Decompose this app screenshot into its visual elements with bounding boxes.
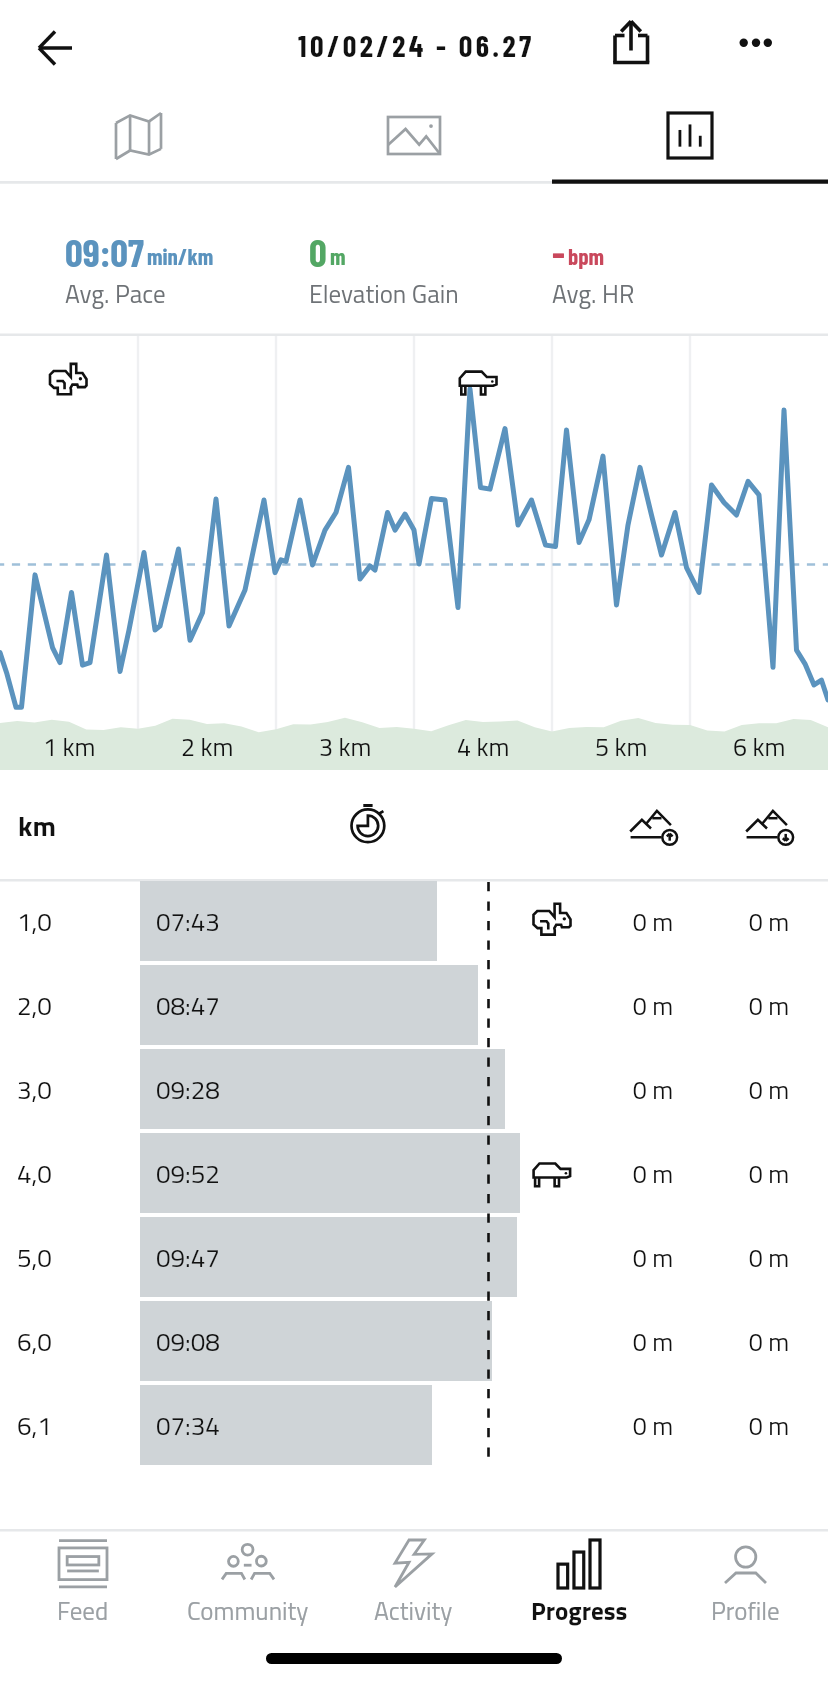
staticText: 2 km xyxy=(181,728,234,766)
staticText: 0 m xyxy=(729,1407,809,1445)
staticText: Progress xyxy=(531,1592,628,1630)
staticText: 3,0 xyxy=(17,1070,52,1110)
staticText: 09:47 xyxy=(156,1238,220,1278)
staticText: 07:43 xyxy=(156,902,220,942)
button[interactable]: 4,0 xyxy=(0,1133,828,1217)
staticText: 07:34 xyxy=(156,1406,220,1446)
staticText: Activity xyxy=(374,1592,453,1630)
button[interactable]: Feed xyxy=(0,1529,165,1653)
staticText: 5 km xyxy=(595,728,648,766)
staticText: 0 m xyxy=(613,1071,693,1109)
staticText: 6 km xyxy=(733,728,786,766)
staticText: 0 m xyxy=(729,1323,809,1361)
staticText: 6,1 xyxy=(17,1406,52,1446)
button[interactable]: 6,1 xyxy=(0,1385,828,1469)
button[interactable]: 2,0 xyxy=(0,965,828,1049)
staticText: - xyxy=(552,228,565,275)
staticText: m xyxy=(330,242,346,270)
staticText: 0 m xyxy=(729,1155,809,1193)
staticText: min/km xyxy=(147,242,214,270)
staticText: Feed xyxy=(57,1592,109,1630)
button[interactable]: Map xyxy=(0,96,276,184)
button[interactable]: Statistics xyxy=(552,96,828,184)
button[interactable]: 6,0 xyxy=(0,1301,828,1385)
staticText: 2,0 xyxy=(17,986,52,1026)
button[interactable]: Progress xyxy=(496,1529,662,1653)
button[interactable]: Photos xyxy=(276,96,552,184)
staticText: 0 xyxy=(309,228,327,275)
staticText: 0 m xyxy=(729,1071,809,1109)
staticText: Avg. Pace xyxy=(65,275,166,313)
staticText: 09:07 xyxy=(65,228,144,275)
staticText: km xyxy=(18,804,56,847)
staticText: 1,0 xyxy=(17,902,52,942)
staticText: 0 m xyxy=(613,987,693,1025)
button[interactable]: More options xyxy=(726,12,790,76)
staticText: 0 m xyxy=(729,987,809,1025)
staticText: 0 m xyxy=(613,1155,693,1193)
staticText: 0 m xyxy=(729,1239,809,1277)
staticText: 09:28 xyxy=(156,1070,220,1110)
staticText: 08:47 xyxy=(156,986,220,1026)
staticText: 10/02/24 - 06.27 xyxy=(298,27,535,63)
staticText: 0 m xyxy=(613,1407,693,1445)
staticText: bpm xyxy=(568,242,605,270)
button[interactable]: Share xyxy=(597,12,665,80)
staticText: 4 km xyxy=(457,728,510,766)
button[interactable]: Profile xyxy=(662,1529,828,1653)
button[interactable]: Community xyxy=(165,1529,330,1653)
staticText: 09:52 xyxy=(156,1154,220,1194)
button[interactable]: 5,0 xyxy=(0,1217,828,1301)
staticText: 09:08 xyxy=(156,1322,220,1362)
button[interactable]: 1,0 xyxy=(0,881,828,965)
staticText: 5,0 xyxy=(17,1238,52,1278)
staticText: Avg. HR xyxy=(552,275,635,313)
staticText: 0 m xyxy=(613,903,693,941)
button[interactable]: 3,0 xyxy=(0,1049,828,1133)
staticText: 1 km xyxy=(43,728,96,766)
staticText: 0 m xyxy=(729,903,809,941)
staticText: Community xyxy=(187,1592,309,1630)
staticText: 4,0 xyxy=(17,1154,52,1194)
staticText: 0 m xyxy=(613,1323,693,1361)
staticText: Profile xyxy=(711,1592,780,1630)
staticText: 6,0 xyxy=(17,1322,52,1362)
button[interactable]: Activity xyxy=(330,1529,496,1653)
staticText: 3 km xyxy=(319,728,372,766)
staticText: Elevation Gain xyxy=(309,275,459,313)
staticText: 0 m xyxy=(613,1239,693,1277)
button[interactable]: Back xyxy=(22,14,90,82)
